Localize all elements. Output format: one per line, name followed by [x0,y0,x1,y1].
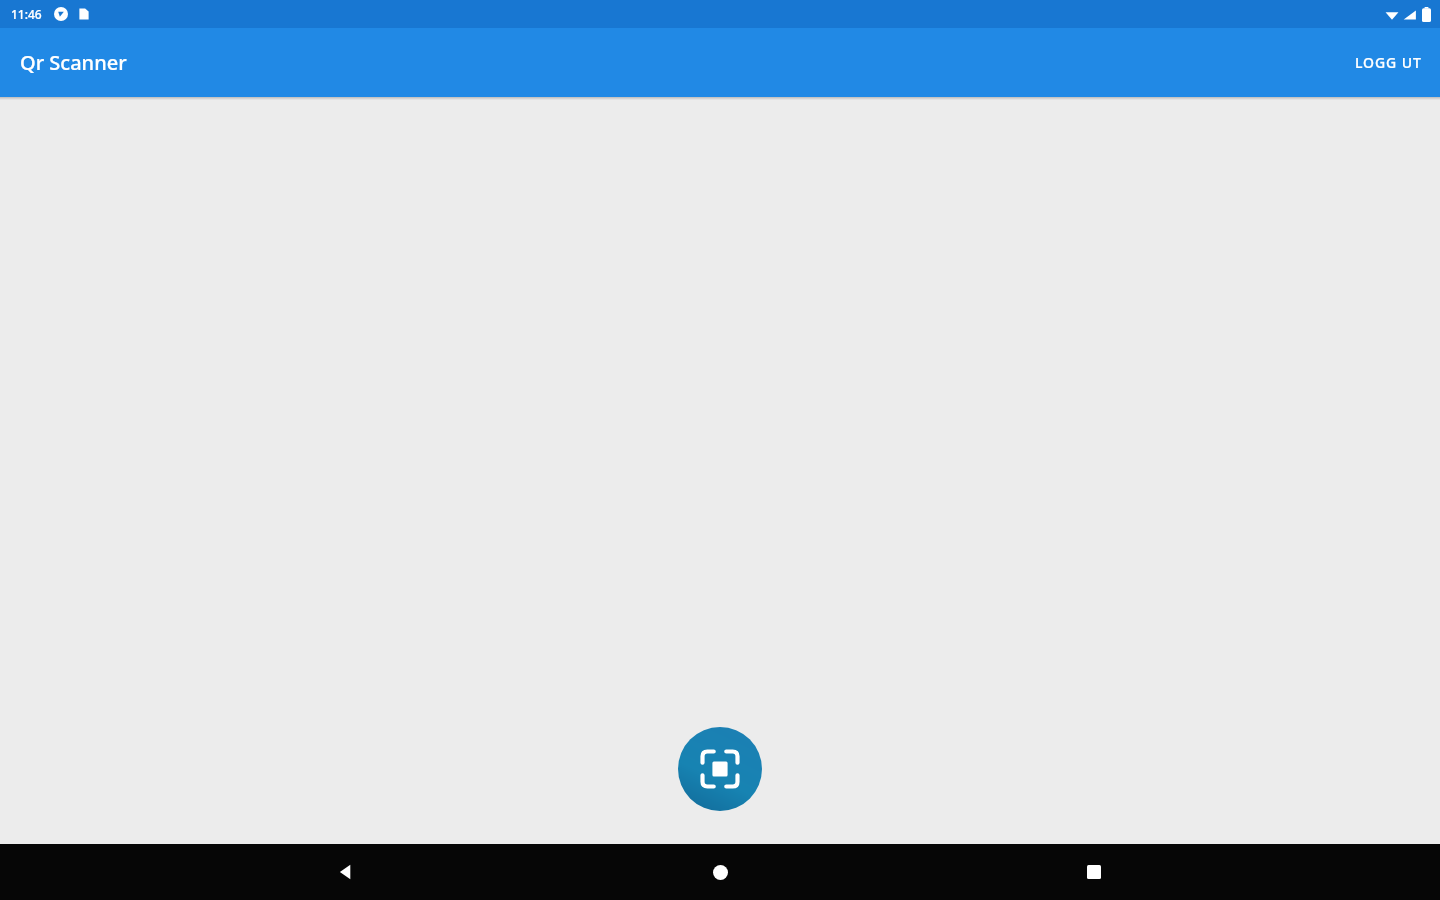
staticText: LOGG UT [1355,53,1422,72]
button[interactable]: Scan QR code [678,727,762,811]
button[interactable]: LOGG UT [1343,43,1434,82]
staticText: 11:46 [11,6,42,22]
button[interactable]: Recent apps [1066,844,1122,900]
staticText: Qr Scanner [20,49,127,76]
button[interactable]: Back [318,844,374,900]
button[interactable]: Home [692,844,748,900]
